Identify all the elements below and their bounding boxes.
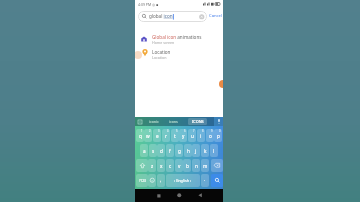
staticText: 8 xyxy=(202,129,204,133)
button[interactable]: icons xyxy=(165,117,181,126)
staticText: icons xyxy=(169,119,178,124)
button[interactable]: , xyxy=(157,174,165,187)
staticText: b xyxy=(186,163,189,169)
button[interactable]: c xyxy=(166,159,174,172)
staticText: r xyxy=(165,133,167,139)
button[interactable]: ICONS xyxy=(188,118,207,125)
staticText: Home screen xyxy=(152,40,175,45)
staticText: 3 xyxy=(158,129,160,133)
staticText: v xyxy=(178,163,181,169)
button[interactable]: x xyxy=(157,159,165,172)
button[interactable]: e xyxy=(153,129,161,142)
button[interactable]: t xyxy=(171,129,179,142)
staticText: p xyxy=(217,133,220,139)
staticText: f xyxy=(169,148,171,154)
button[interactable]: Cancel xyxy=(209,12,223,21)
staticText: 0 xyxy=(219,129,221,133)
button[interactable]: v xyxy=(175,159,183,172)
button[interactable] xyxy=(211,159,223,172)
staticText: ‹ English › xyxy=(174,178,192,183)
button[interactable]: q xyxy=(136,129,144,142)
button[interactable]: z xyxy=(148,159,156,172)
staticText: x xyxy=(160,163,163,169)
button[interactable]: i xyxy=(197,129,205,142)
button[interactable] xyxy=(157,194,161,198)
button[interactable]: p xyxy=(214,129,222,142)
staticText: g xyxy=(178,148,181,154)
button[interactable]: ?123 xyxy=(136,174,148,187)
button[interactable]: r xyxy=(162,129,170,142)
button[interactable] xyxy=(148,174,156,187)
button[interactable]: l xyxy=(210,144,218,157)
button[interactable]: iconic xyxy=(145,117,163,126)
button[interactable]: Global icon animations xyxy=(135,33,223,46)
staticText: 4:09 PM ◎ ▪ xyxy=(138,2,159,7)
staticText: u xyxy=(191,133,194,139)
staticText: . xyxy=(204,176,206,182)
staticText: 6 xyxy=(184,129,186,133)
button[interactable] xyxy=(138,120,142,124)
staticText: 4 xyxy=(167,129,169,133)
staticText: m xyxy=(203,163,208,169)
staticText: n xyxy=(195,163,198,169)
button[interactable]: m xyxy=(201,159,209,172)
staticText: e xyxy=(156,133,159,139)
staticText: 2 xyxy=(149,129,151,133)
button[interactable]: u xyxy=(188,129,196,142)
staticText: l xyxy=(213,148,215,154)
button[interactable]: ‹ English › xyxy=(166,174,200,187)
button[interactable]: g xyxy=(175,144,183,157)
staticText: 7 xyxy=(193,129,195,133)
staticText: q xyxy=(139,133,142,139)
button[interactable] xyxy=(199,14,205,20)
button[interactable]: h xyxy=(184,144,192,157)
staticText: k xyxy=(204,148,207,154)
button[interactable]: j xyxy=(192,144,200,157)
button[interactable]: d xyxy=(157,144,165,157)
staticText: h xyxy=(187,148,190,154)
button[interactable]: a xyxy=(140,144,148,157)
staticText: a xyxy=(143,148,146,154)
button[interactable]: y xyxy=(179,129,187,142)
staticText: s xyxy=(152,148,155,154)
staticText: ?123 xyxy=(139,179,146,183)
button[interactable] xyxy=(136,159,148,172)
staticText: 9 xyxy=(211,129,213,133)
staticText: Global icon animations xyxy=(152,34,202,40)
staticText: iconic xyxy=(149,119,159,124)
button[interactable] xyxy=(211,174,223,187)
staticText: , xyxy=(160,177,162,183)
staticText: i xyxy=(200,133,202,139)
button[interactable] xyxy=(198,193,203,198)
button[interactable]: k xyxy=(201,144,209,157)
staticText: Location xyxy=(152,49,171,55)
staticText: Cancel xyxy=(209,13,223,19)
staticText: 1 xyxy=(141,129,143,133)
button[interactable]: n xyxy=(192,159,200,172)
button[interactable]: o xyxy=(206,129,214,142)
staticText: global icon xyxy=(149,13,173,19)
staticText: c xyxy=(169,163,172,169)
button[interactable]: w xyxy=(144,129,152,142)
button[interactable]: Location xyxy=(135,47,223,60)
button[interactable]: . xyxy=(201,174,209,187)
staticText: ICONS xyxy=(192,119,204,124)
button[interactable]: f xyxy=(166,144,174,157)
button[interactable]: s xyxy=(149,144,157,157)
staticText: z xyxy=(151,163,154,169)
button[interactable] xyxy=(214,117,223,126)
staticText: o xyxy=(209,133,212,139)
staticText: w xyxy=(146,133,150,139)
staticText: y xyxy=(182,133,185,139)
staticText: d xyxy=(160,148,163,154)
staticText: 5 xyxy=(176,129,178,133)
staticText: Location xyxy=(152,55,167,60)
staticText: j xyxy=(195,148,197,154)
staticText: t xyxy=(174,133,176,139)
button[interactable] xyxy=(177,193,182,198)
button[interactable]: b xyxy=(183,159,191,172)
button[interactable]: global icon xyxy=(138,11,207,22)
